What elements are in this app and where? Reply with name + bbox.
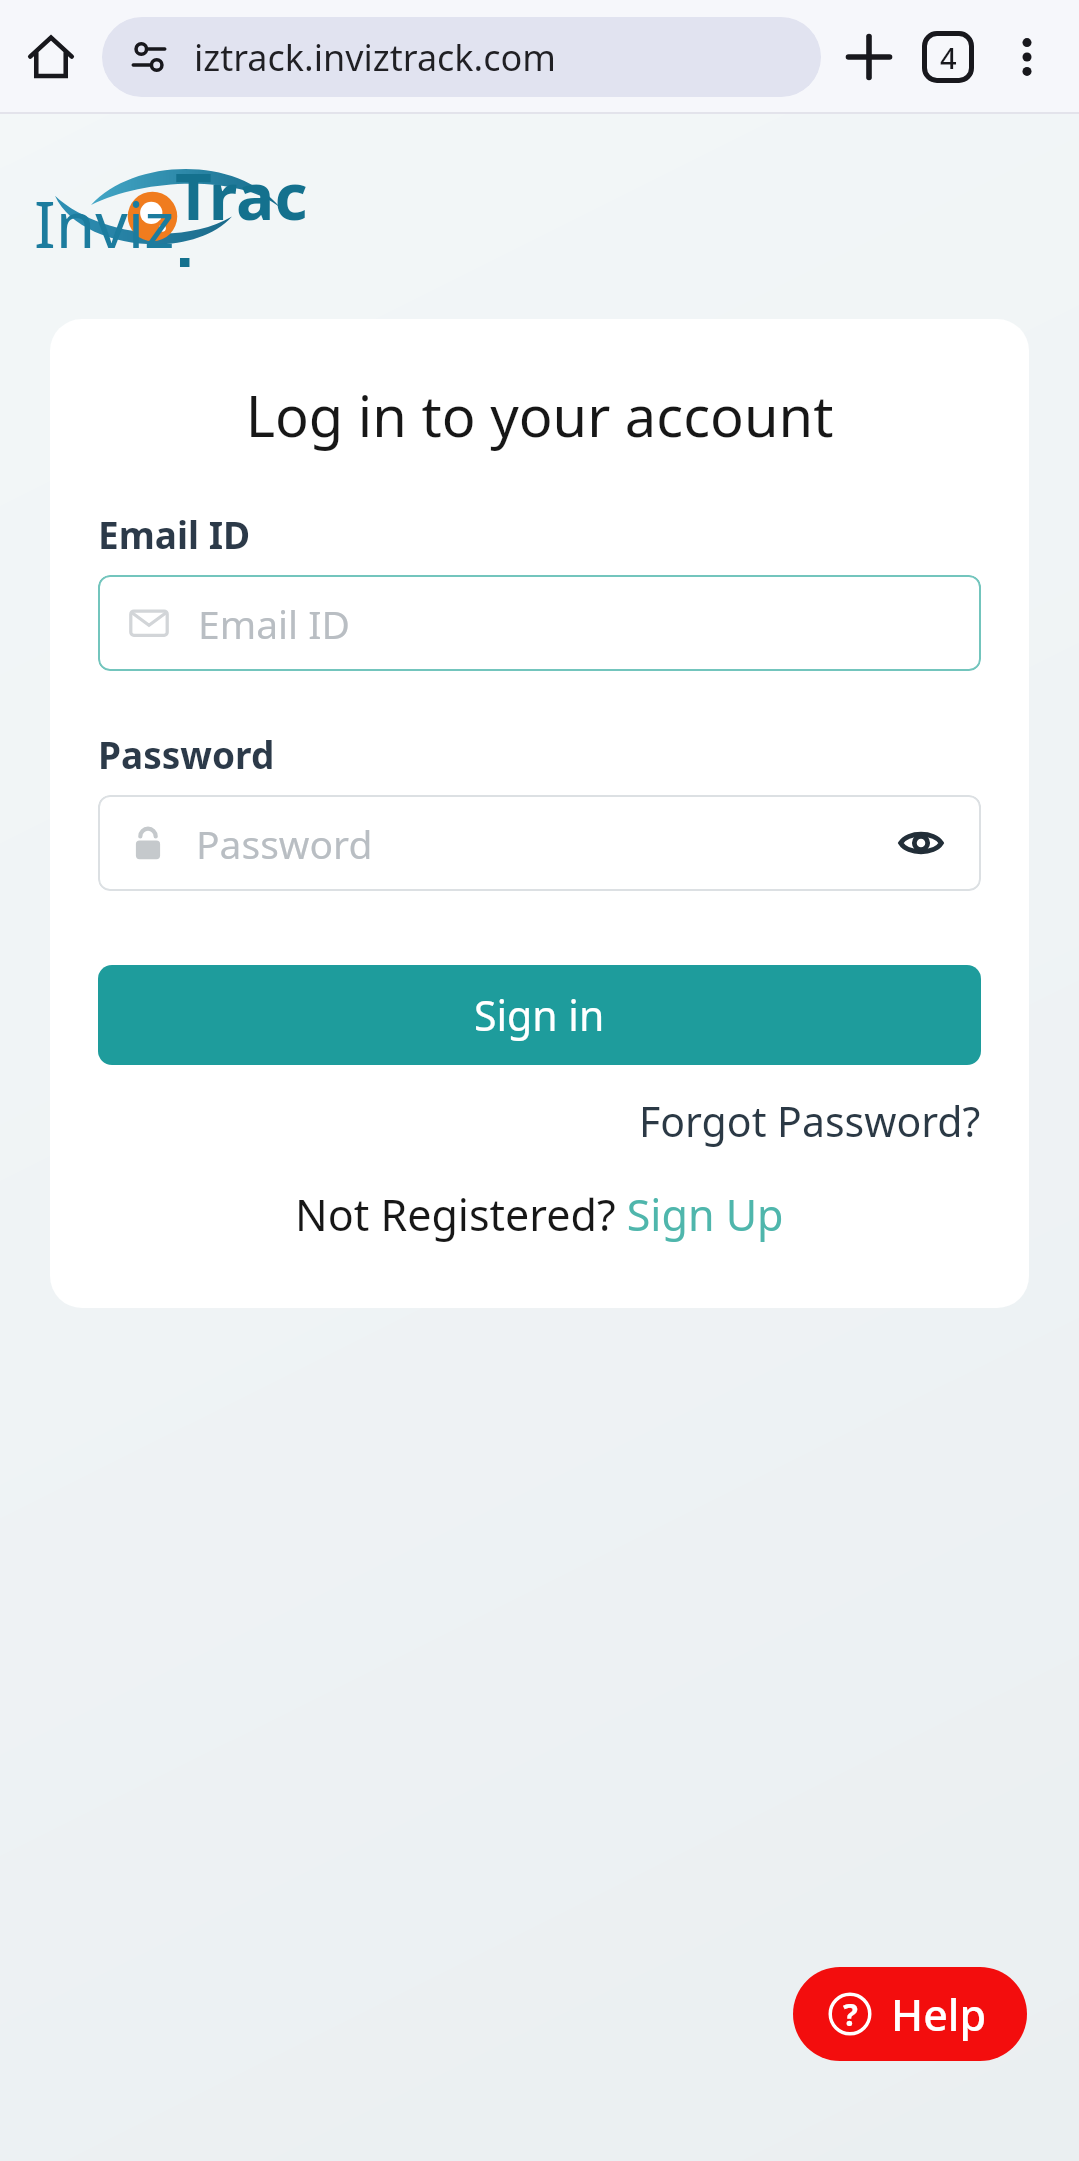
staticText: iztrack.inviztrack.com [194, 33, 556, 82]
button[interactable]: Email ID [98, 575, 981, 671]
staticText: Email ID [98, 509, 251, 559]
button[interactable]: ? [793, 1967, 1027, 2061]
button[interactable]: Not Registered? Sign Up [295, 1181, 784, 1248]
button[interactable]: Home [14, 20, 88, 94]
staticText: Email ID [198, 597, 350, 650]
button[interactable]: More options [989, 19, 1065, 95]
staticText: Password [196, 817, 373, 870]
button[interactable]: Sign in [98, 965, 981, 1065]
staticText: Sign in [474, 987, 605, 1043]
button[interactable]: Switch tabs, 4 open [907, 16, 989, 98]
button[interactable]: New tab [831, 19, 907, 95]
staticText: Track [175, 152, 334, 267]
button[interactable]: Forgot Password? [639, 1087, 981, 1155]
staticText: Password [98, 729, 275, 779]
staticText: Not Registered? Sign Up [295, 1185, 784, 1244]
staticText: ? [843, 1993, 858, 2035]
button[interactable]: Show password [889, 811, 953, 875]
staticText: Forgot Password? [639, 1093, 981, 1149]
staticText: Inviz [34, 180, 175, 267]
button[interactable]: iztrack.inviztrack.com [102, 17, 821, 97]
staticText: Log in to your account [98, 377, 981, 453]
staticText: 4 [940, 38, 957, 77]
staticText: Help [891, 1985, 987, 2044]
button[interactable]: Password [98, 795, 981, 891]
